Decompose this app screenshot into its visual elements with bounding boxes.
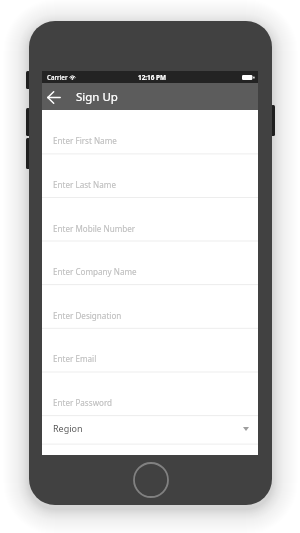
staticText: Enter Mobile Number — [53, 223, 136, 234]
button[interactable]: Back — [44, 85, 64, 109]
staticText: Enter First Name — [53, 135, 117, 146]
button[interactable]: Enter Company Name — [42, 241, 258, 285]
staticText: Carrier — [47, 73, 68, 81]
staticText: Enter Designation — [53, 310, 122, 321]
staticText: Enter Password — [53, 397, 113, 408]
button[interactable]: Enter Last Name — [42, 154, 258, 198]
staticText: Enter Company Name — [53, 266, 137, 277]
staticText: Enter Email — [53, 353, 97, 364]
staticText: 12:16 PM — [138, 73, 167, 82]
staticText: Region — [53, 422, 83, 434]
button[interactable]: Enter Password — [42, 372, 258, 416]
button[interactable]: Enter Mobile Number — [42, 198, 258, 242]
button[interactable]: Enter Email — [42, 328, 258, 372]
staticText: Enter Last Name — [53, 179, 116, 190]
button[interactable]: Region — [42, 416, 258, 445]
button[interactable]: Enter First Name — [42, 110, 258, 154]
button[interactable]: Enter Designation — [42, 285, 258, 329]
staticText: Sign Up — [76, 89, 118, 105]
